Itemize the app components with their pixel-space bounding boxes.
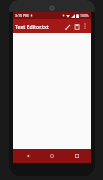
button[interactable]: More options — [81, 22, 89, 30]
button[interactable]: Home — [42, 149, 62, 163]
staticText: 100% — [80, 13, 89, 18]
button[interactable]: Back — [18, 149, 38, 163]
button[interactable]: Save — [72, 22, 81, 31]
button[interactable]: Edit — [63, 22, 72, 31]
staticText: 3:15 PM — [15, 13, 29, 18]
button[interactable]: Recent apps — [67, 149, 87, 163]
staticText: Text Editor.txt — [15, 23, 63, 30]
